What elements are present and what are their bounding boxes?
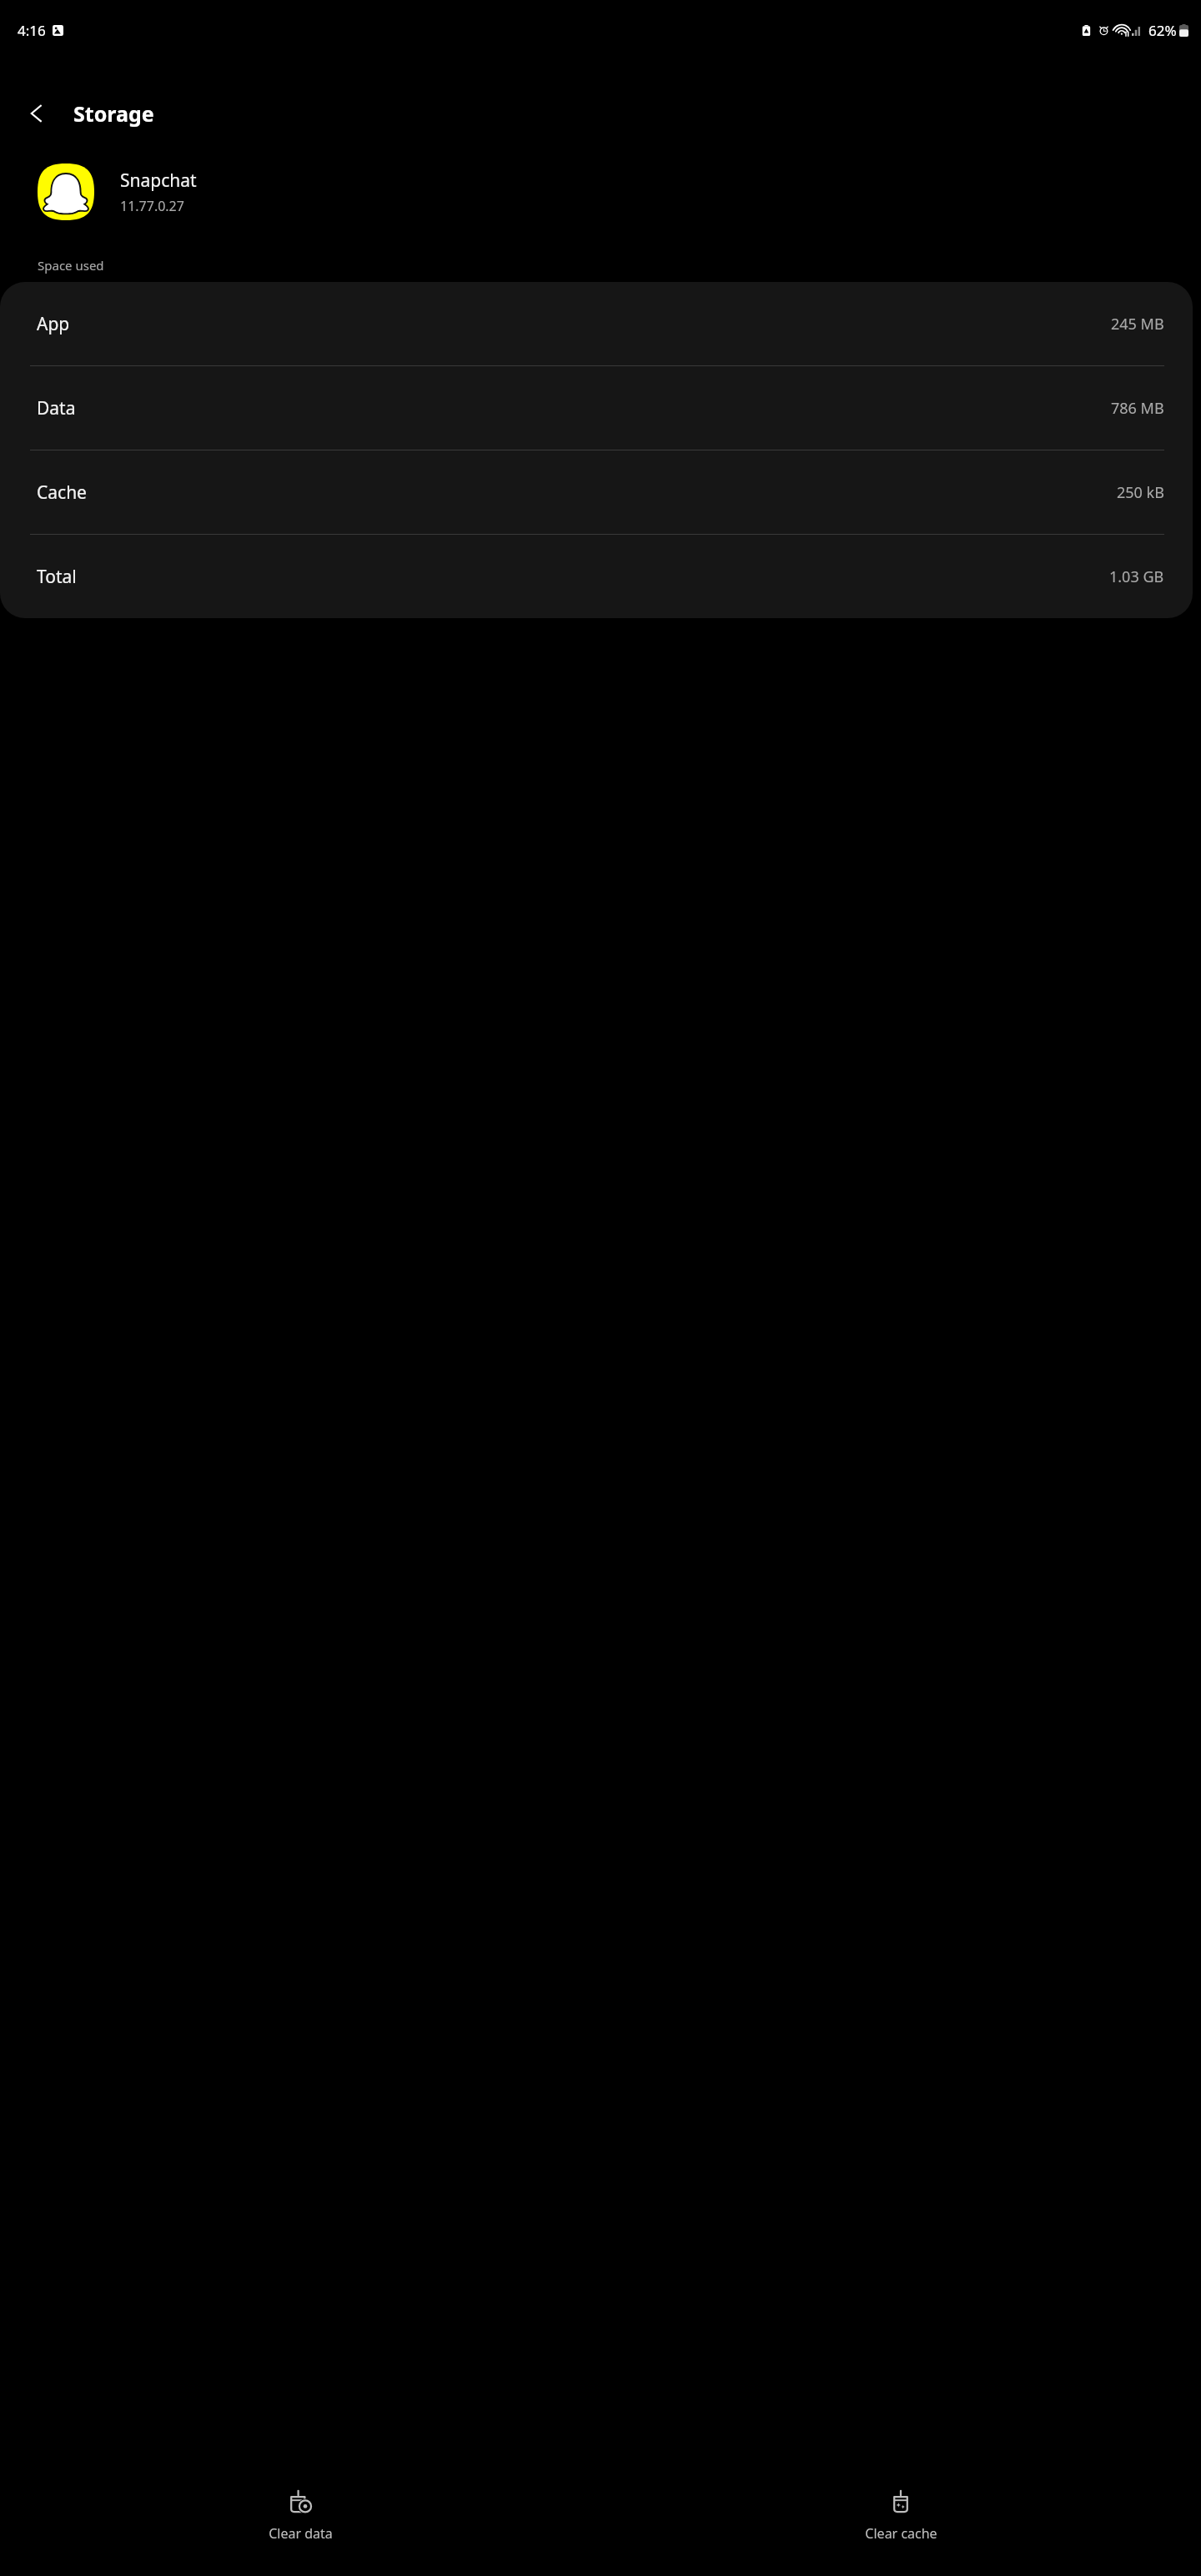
button[interactable]: App — [0, 282, 1193, 365]
staticText: Total — [37, 565, 77, 589]
staticText: Clear cache — [865, 2524, 937, 2543]
staticText: Storage — [73, 99, 154, 128]
button[interactable]: Cache — [0, 450, 1193, 534]
staticText: 11.77.0.27 — [120, 197, 184, 215]
staticText: Data — [37, 396, 76, 420]
button[interactable]: Data — [0, 366, 1193, 450]
staticText: Space used — [38, 257, 104, 274]
button[interactable]: Clear cache — [600, 2481, 1201, 2551]
button[interactable]: Clear data — [0, 2481, 600, 2551]
button[interactable]: Total — [0, 535, 1193, 618]
staticText: 1.03 GB — [1109, 566, 1164, 587]
staticText: Clear data — [269, 2524, 333, 2543]
staticText: 4:16 — [18, 21, 46, 40]
staticText: 786 MB — [1111, 398, 1164, 419]
button[interactable]: Back — [13, 90, 60, 137]
staticText: 62% — [1148, 21, 1177, 40]
staticText: Snapchat — [120, 169, 197, 193]
staticText: 250 kB — [1117, 482, 1164, 503]
staticText: 245 MB — [1111, 314, 1164, 335]
staticText: Cache — [37, 480, 87, 505]
staticText: App — [37, 312, 70, 336]
